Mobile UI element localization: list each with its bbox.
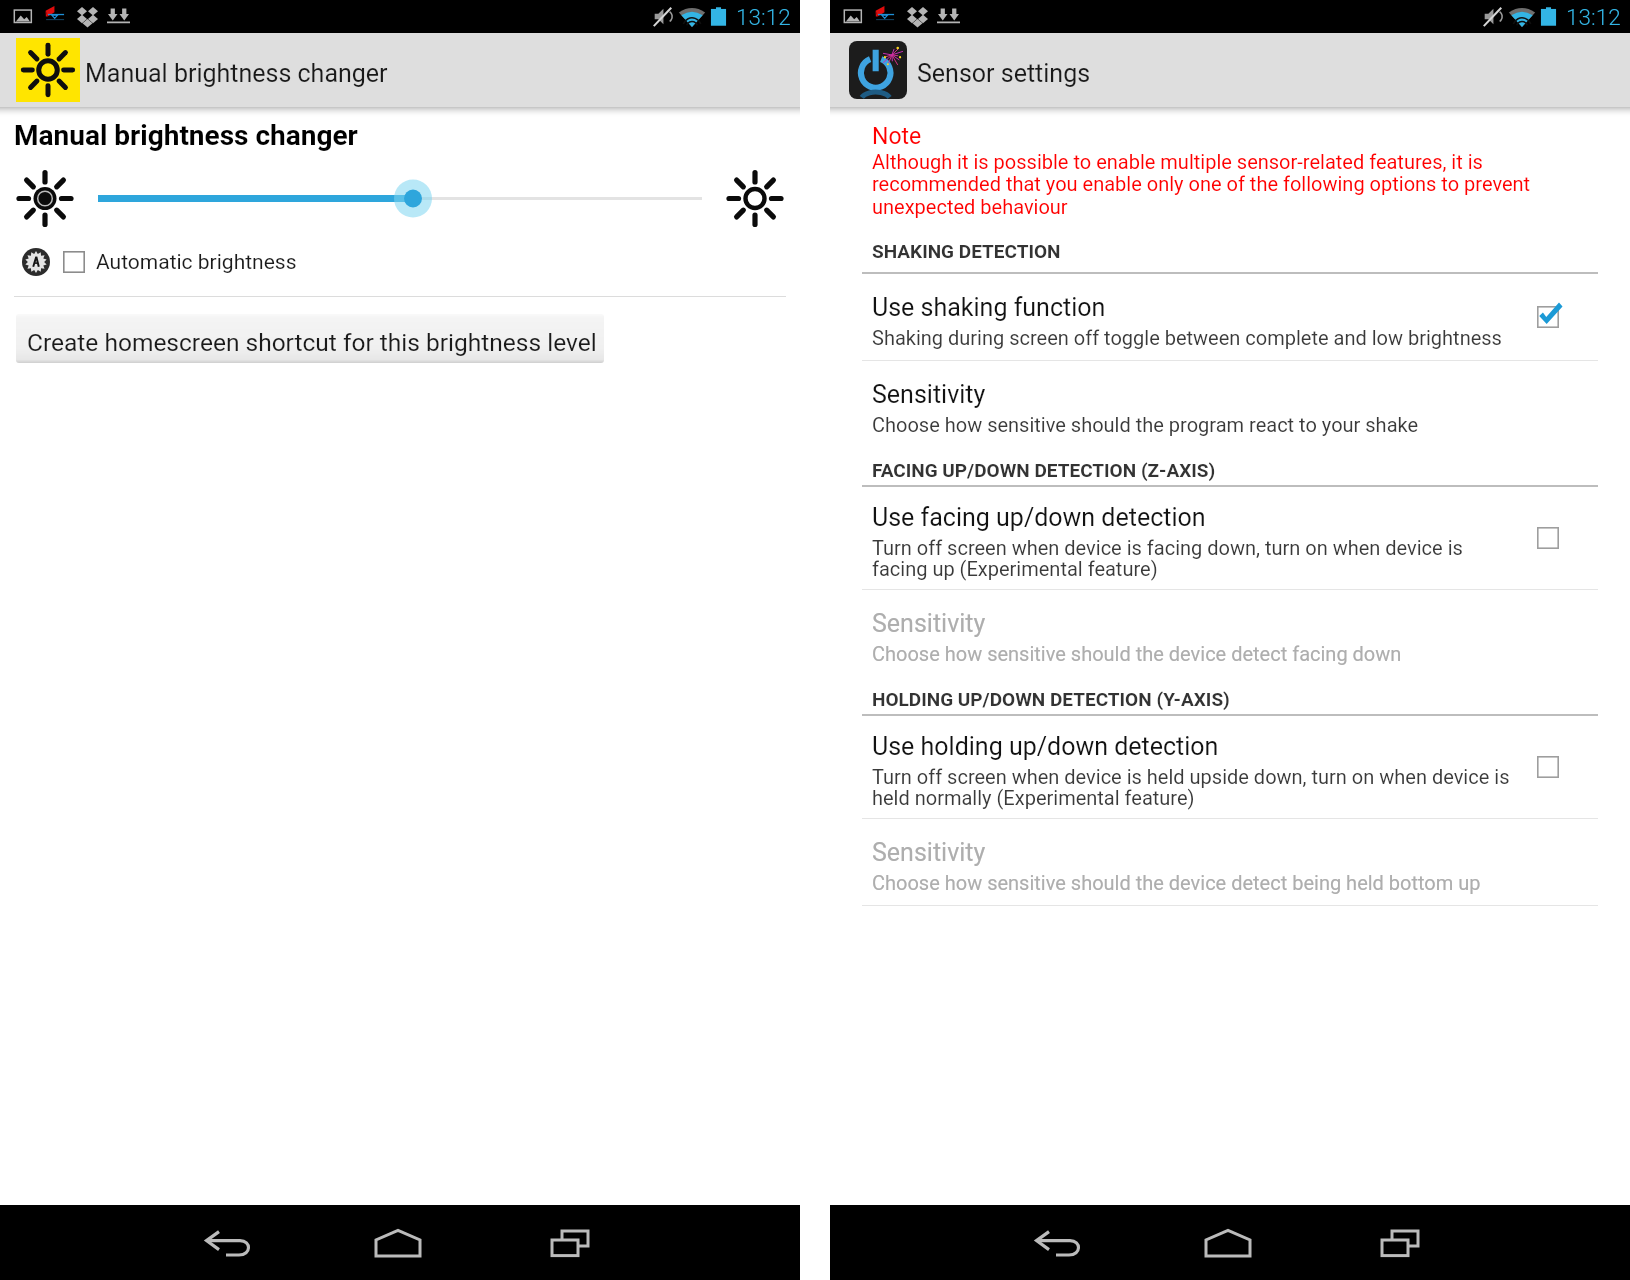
button[interactable]: Sensitivity <box>830 590 1630 676</box>
button[interactable]: Recent apps <box>1352 1205 1448 1280</box>
staticText: Turn off screen when device is facing do… <box>872 536 1522 581</box>
staticText: Choose how sensitive should the device d… <box>872 642 1402 665</box>
staticText: HOLDING UP/DOWN DETECTION (Y-AXIS) <box>872 688 1230 710</box>
button[interactable]: App icon, navigate up <box>0 33 800 107</box>
staticText: Manual brightness changer <box>85 59 388 88</box>
staticText: Sensitivity <box>872 838 986 867</box>
staticText: Choose how sensitive should the device d… <box>872 871 1481 894</box>
staticText: Create homescreen shortcut for this brig… <box>27 328 597 357</box>
button[interactable]: Create homescreen shortcut for this brig… <box>16 314 604 363</box>
button[interactable]: App icon, navigate up <box>830 33 1630 107</box>
staticText: FACING UP/DOWN DETECTION (Z-AXIS) <box>872 459 1216 481</box>
other: App icon, navigate up <box>849 41 907 99</box>
button[interactable]: Recent apps <box>522 1205 618 1280</box>
staticText: Choose how sensitive should the program … <box>872 413 1419 436</box>
button[interactable]: Home <box>350 1205 446 1280</box>
staticText: Automatic brightness <box>96 250 297 275</box>
staticText: 13:12 <box>736 4 791 30</box>
staticText: SHAKING DETECTION <box>872 240 1061 262</box>
staticText: 13:12 <box>1566 4 1621 30</box>
staticText: Use holding up/down detection <box>872 732 1219 761</box>
staticText: Manual brightness changer <box>14 119 358 152</box>
button[interactable]: Automatic brightness <box>0 243 800 281</box>
staticText: Use facing up/down detection <box>872 503 1206 532</box>
button[interactable]: Back <box>1011 1205 1107 1280</box>
button[interactable]: Use holding up/down detection <box>830 716 1630 818</box>
button[interactable]: Use shaking function <box>830 274 1630 360</box>
staticText: Turn off screen when device is held upsi… <box>872 765 1522 810</box>
button[interactable]: Sensitivity <box>830 819 1630 905</box>
staticText: Note <box>872 123 922 150</box>
button[interactable]: Brightness level slider <box>0 154 800 243</box>
other: App icon, navigate up <box>16 38 80 102</box>
staticText: Sensitivity <box>872 380 986 409</box>
staticText: Sensor settings <box>917 59 1091 88</box>
staticText: Use shaking function <box>872 293 1106 322</box>
button[interactable]: Sensitivity <box>830 361 1630 447</box>
button[interactable]: Use facing up/down detection <box>830 487 1630 589</box>
button[interactable]: Back <box>181 1205 277 1280</box>
staticText: Shaking during screen off toggle between… <box>872 326 1502 349</box>
button[interactable]: Home <box>1180 1205 1276 1280</box>
staticText: Although it is possible to enable multip… <box>872 150 1532 219</box>
staticText: Sensitivity <box>872 609 986 638</box>
